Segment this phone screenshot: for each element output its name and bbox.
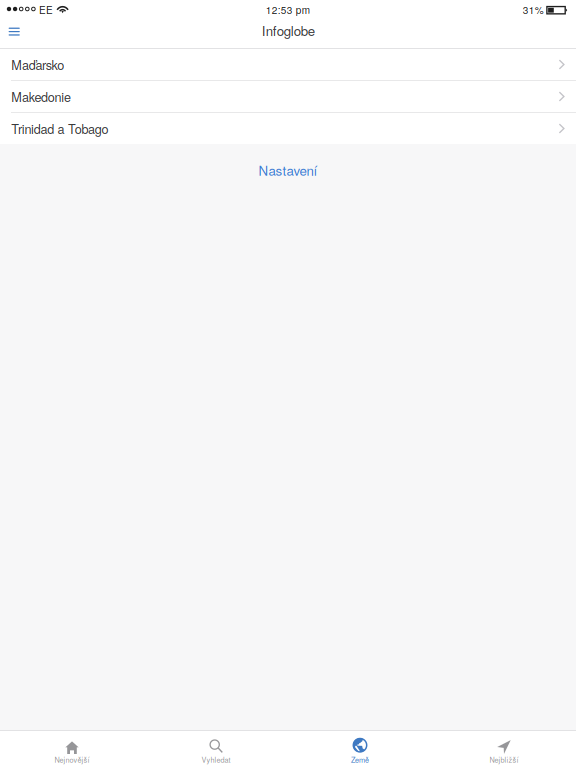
staticText: Nejbližší <box>489 754 518 765</box>
staticText: Nejnovější <box>54 754 89 765</box>
button[interactable]: Nastavení <box>0 148 576 192</box>
staticText: Nastavení <box>258 160 317 180</box>
staticText: 31% <box>523 2 544 17</box>
button[interactable]: Maďarsko <box>0 49 576 80</box>
staticText: 12:53 pm <box>266 2 310 17</box>
button[interactable]: Nejbližší <box>432 731 576 768</box>
staticText: Země <box>351 754 369 765</box>
button[interactable]: Makedonie <box>0 81 576 112</box>
staticText: Vyhledat <box>201 754 230 765</box>
button[interactable]: Země <box>288 731 432 768</box>
staticText: Infoglobe <box>262 21 315 40</box>
staticText: EE <box>39 2 53 17</box>
staticText: Trinidad a Tobago <box>11 119 108 137</box>
button[interactable]: Nejnovější <box>0 731 144 768</box>
button[interactable]: Vyhledat <box>144 731 288 768</box>
button[interactable]: Menu <box>0 18 30 46</box>
button[interactable]: Trinidad a Tobago <box>0 113 576 144</box>
staticText: Makedonie <box>11 87 71 105</box>
staticText: Maďarsko <box>11 55 64 73</box>
